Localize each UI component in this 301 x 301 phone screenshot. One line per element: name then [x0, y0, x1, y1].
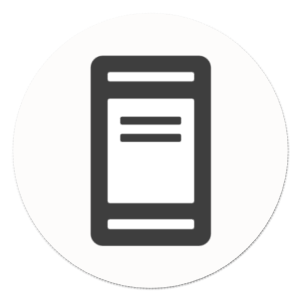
button[interactable]: Open reader — [0, 0, 301, 301]
